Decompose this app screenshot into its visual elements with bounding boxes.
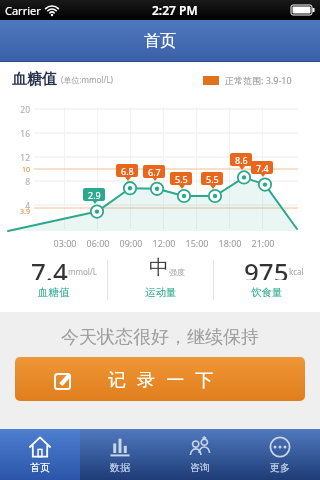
staticText: 18:00 xyxy=(214,237,246,249)
staticText: 运动量 xyxy=(145,286,177,299)
staticText: 血糖值 xyxy=(12,70,57,89)
staticText: 09:00 xyxy=(115,237,147,249)
staticText: 10 xyxy=(16,165,30,175)
staticText: 8.6 xyxy=(235,154,248,166)
staticText: 中 xyxy=(149,255,169,280)
staticText: 饮食量 xyxy=(251,286,283,299)
button[interactable]: 记 录 一 下 xyxy=(15,357,305,401)
staticText: 记 录 一 下 xyxy=(108,367,217,392)
staticText: 7.4 xyxy=(31,254,68,280)
staticText: 6.7 xyxy=(148,166,161,178)
staticText: 血糖值 xyxy=(38,286,70,299)
button[interactable]: 首页 xyxy=(0,429,80,480)
staticText: 12:00 xyxy=(148,237,180,249)
staticText: 15:00 xyxy=(181,237,213,249)
staticText: 5.5 xyxy=(175,173,188,185)
staticText: 03:00 xyxy=(49,237,81,249)
staticText: 975 xyxy=(244,254,289,280)
button[interactable]: 咨询 xyxy=(160,429,240,480)
staticText: 16 xyxy=(8,128,30,140)
staticText: 数据 xyxy=(110,461,130,474)
staticText: 5.5 xyxy=(206,173,219,185)
button[interactable]: 中 xyxy=(108,254,213,304)
staticText: Carrier xyxy=(5,3,41,18)
staticText: 首页 xyxy=(144,31,176,51)
staticText: kcal xyxy=(289,266,304,277)
staticText: 8 xyxy=(8,176,30,188)
staticText: 7.4 xyxy=(256,162,269,174)
staticText: 21:00 xyxy=(247,237,279,249)
staticText: 4 xyxy=(8,200,30,212)
button[interactable]: 7.4 xyxy=(0,254,107,304)
staticText: 2.9 xyxy=(88,189,101,201)
staticText: 06:00 xyxy=(82,237,114,249)
button[interactable]: 975 xyxy=(214,254,319,304)
staticText: 强度 xyxy=(169,267,185,277)
staticText: (单位:mmol/L) xyxy=(61,74,113,85)
staticText: 咨询 xyxy=(190,461,210,474)
staticText: 更多 xyxy=(270,461,290,474)
staticText: 3.9 xyxy=(16,207,30,217)
staticText: 20 xyxy=(8,104,30,116)
staticText: 12 xyxy=(8,152,30,164)
staticText: 正常范围: 3.9-10 xyxy=(225,74,292,86)
staticText: 6.8 xyxy=(121,165,134,177)
staticText: mmol/L xyxy=(68,266,98,277)
button[interactable]: 更多 xyxy=(240,429,320,480)
staticText: 2:27 PM xyxy=(152,2,198,18)
staticText: 今天状态很好，继续保持 xyxy=(61,326,259,349)
button[interactable]: 数据 xyxy=(80,429,160,480)
staticText: 首页 xyxy=(30,461,50,474)
